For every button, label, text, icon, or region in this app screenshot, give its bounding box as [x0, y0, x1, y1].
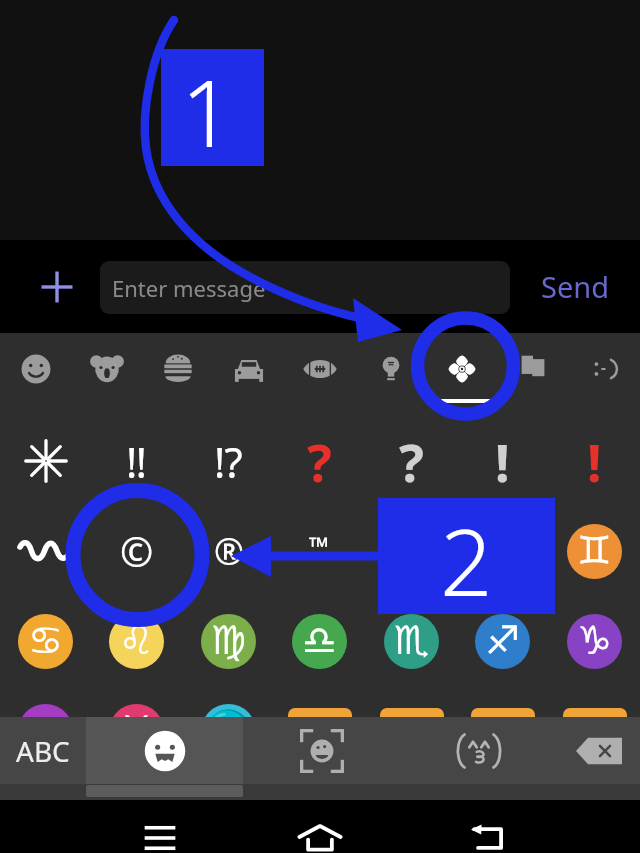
button[interactable]: Home [260, 800, 380, 853]
button[interactable]: ♓ [91, 686, 182, 717]
staticText: ™ [309, 528, 330, 563]
staticText: ♐ [485, 618, 520, 663]
button[interactable]: Travel and places [213, 333, 284, 416]
button[interactable]: Add attachment [34, 264, 80, 310]
button[interactable]: ♐ [457, 596, 548, 686]
button[interactable]: ♉ [457, 506, 548, 596]
button[interactable]: ™ [274, 506, 365, 596]
staticText: ! [587, 426, 602, 497]
staticText: © [120, 524, 154, 578]
button[interactable] [549, 686, 640, 717]
staticText: ? [399, 426, 424, 497]
button[interactable]: © [91, 506, 182, 596]
button[interactable]: ♈ [366, 506, 457, 596]
button[interactable]: ♋ [0, 596, 91, 686]
button[interactable]: ♊ [549, 506, 640, 596]
button[interactable]: Back [420, 800, 540, 853]
button[interactable]: Activities [284, 333, 355, 416]
button[interactable]: ⁉ [183, 416, 274, 506]
button[interactable]: ABC [0, 717, 86, 784]
button[interactable]: Backspace [557, 717, 640, 784]
staticText: Enter message [112, 273, 266, 303]
staticText: Send [541, 267, 610, 306]
staticText: ⛎ [204, 708, 253, 717]
button[interactable]: Food and drink [142, 333, 213, 416]
button[interactable] [274, 686, 365, 717]
staticText: ‼ [126, 433, 147, 490]
button[interactable]: Objects [355, 333, 426, 416]
button[interactable]: Send [541, 267, 610, 306]
staticText: ♊ [577, 528, 612, 573]
button[interactable] [366, 686, 457, 717]
staticText: ⁉ [214, 433, 243, 490]
staticText: ♓ [119, 708, 154, 717]
button[interactable]: ‼ [91, 416, 182, 506]
button[interactable]: ! [549, 416, 640, 506]
staticText: ® [214, 527, 244, 576]
button[interactable]: Emoji [86, 717, 243, 784]
staticText: ♒ [28, 708, 63, 717]
button[interactable]: Flags [497, 333, 568, 416]
staticText: ♍ [211, 618, 246, 663]
staticText: 2 [440, 498, 493, 614]
staticText: ABC [16, 732, 70, 770]
staticText: 1 [181, 49, 234, 166]
button[interactable]: ♌ [91, 596, 182, 686]
button[interactable]: Smileys [0, 333, 71, 416]
staticText: ♋ [28, 618, 63, 663]
staticText: ! [495, 426, 510, 497]
button[interactable]: ? [366, 416, 457, 506]
staticText: ♎ [302, 618, 337, 663]
button[interactable]: ♎ [274, 596, 365, 686]
button[interactable]: Animals and nature [71, 333, 142, 416]
button[interactable]: Enter message [100, 261, 510, 314]
button[interactable]: Stickers [243, 717, 400, 784]
button[interactable] [0, 506, 91, 596]
button[interactable] [0, 416, 91, 506]
button[interactable]: ♑ [549, 596, 640, 686]
button[interactable]: ♍ [183, 596, 274, 686]
button[interactable]: ⛎ [183, 686, 274, 717]
button[interactable] [457, 686, 548, 717]
button[interactable]: Emoticons [568, 333, 639, 416]
staticText: ♑ [577, 618, 612, 663]
button[interactable]: ♏ [366, 596, 457, 686]
button[interactable]: ♒ [0, 686, 91, 717]
staticText: ♌ [119, 618, 154, 663]
staticText: ? [307, 426, 332, 497]
button[interactable]: Recent apps [100, 800, 220, 853]
button[interactable]: Kaomoji [400, 717, 557, 784]
button[interactable]: ! [457, 416, 548, 506]
button[interactable]: ® [183, 506, 274, 596]
staticText: ♏ [394, 618, 429, 663]
button[interactable]: Symbols [426, 333, 497, 416]
button[interactable]: ? [274, 416, 365, 506]
